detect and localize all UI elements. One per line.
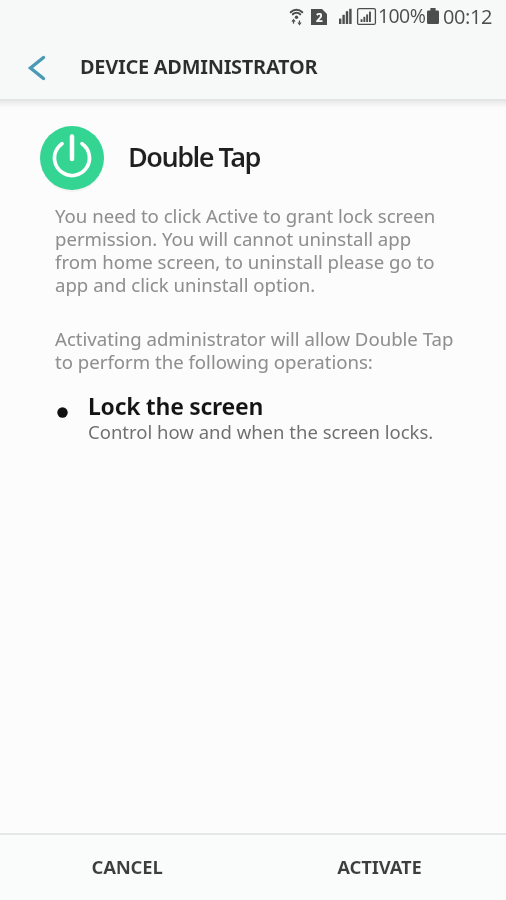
staticText: DEVICE ADMINISTRATOR bbox=[80, 53, 318, 80]
button[interactable]: CANCEL bbox=[0, 834, 253, 898]
button[interactable]: ACTIVATE bbox=[253, 834, 506, 898]
staticText: Lock the screen bbox=[88, 390, 264, 421]
staticText: ACTIVATE bbox=[337, 854, 422, 879]
staticText: Activating administrator will allow Doub… bbox=[55, 326, 454, 375]
staticText: Control how and when the screen locks. bbox=[88, 419, 434, 444]
staticText: You need to click Active to grant lock s… bbox=[55, 203, 436, 298]
staticText: 2 bbox=[316, 10, 323, 26]
button[interactable] bbox=[20, 52, 54, 84]
staticText: 00:12 bbox=[443, 3, 493, 30]
staticText: 100% bbox=[378, 2, 426, 29]
staticText: Double Tap bbox=[128, 138, 260, 175]
staticText: CANCEL bbox=[91, 854, 163, 879]
